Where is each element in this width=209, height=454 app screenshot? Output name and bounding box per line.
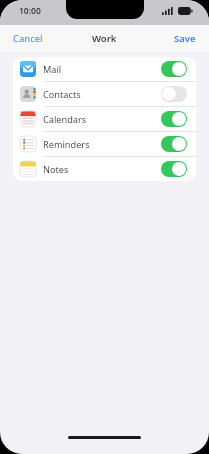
button[interactable]: Reminders on [161,136,187,152]
button[interactable]: Mail [13,57,196,81]
staticText: Notes [43,163,161,176]
button[interactable]: Calendars [13,107,196,131]
button[interactable]: Notes on [161,161,187,177]
staticText: Contacts [43,88,161,101]
staticText: Work [92,32,117,45]
staticText: Calendars [43,113,161,126]
button[interactable]: Save [166,27,209,50]
staticText: Mail [43,63,161,76]
staticText: Reminders [43,138,161,151]
button[interactable]: Contacts [13,82,196,106]
button[interactable]: Mail on [161,61,187,77]
button[interactable]: Reminders [13,132,196,156]
staticText: Save [174,32,196,45]
button[interactable]: Contacts off [161,86,187,102]
button[interactable]: Calendars on [161,111,187,127]
button[interactable]: Notes [13,157,196,181]
button[interactable]: Cancel [0,27,51,50]
staticText: 10:00 [19,5,41,17]
staticText: Cancel [13,32,43,45]
